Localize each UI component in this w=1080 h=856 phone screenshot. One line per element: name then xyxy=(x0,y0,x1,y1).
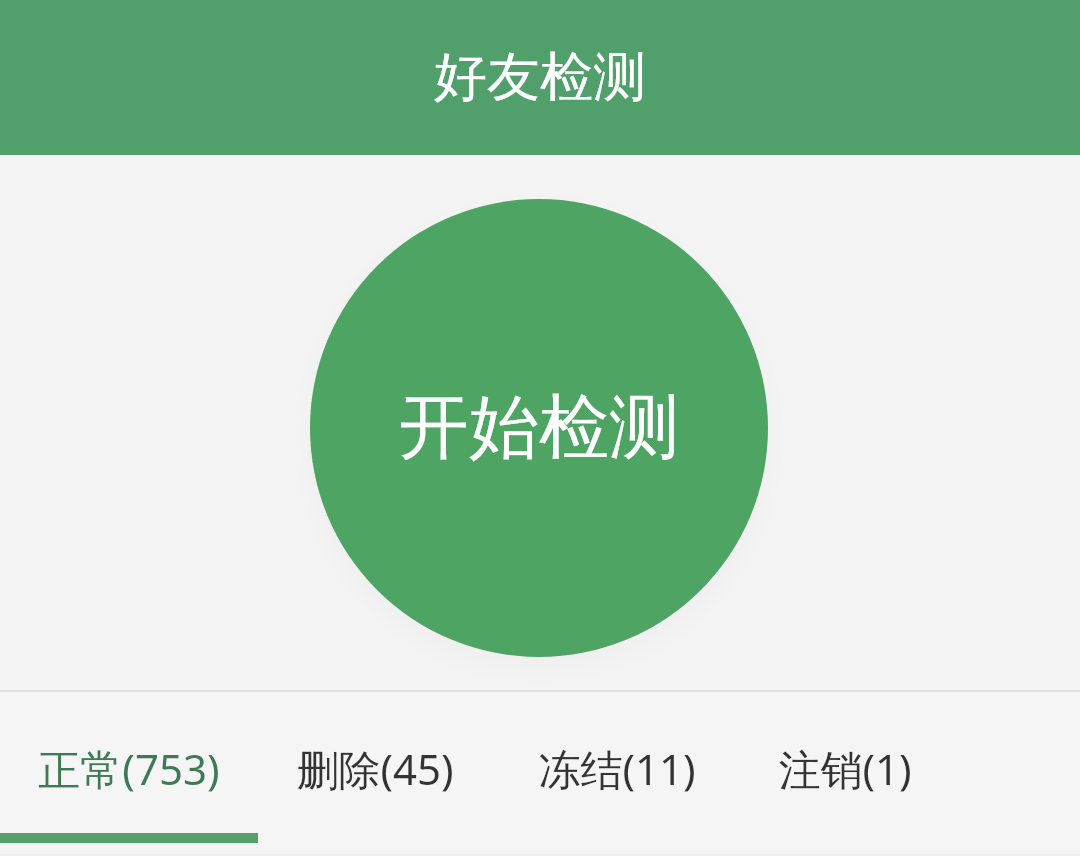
staticText: 删除(45) xyxy=(296,740,454,797)
button[interactable]: 删除(45) xyxy=(258,692,500,844)
staticText: 好友检测 xyxy=(434,44,646,111)
staticText: 注销(1) xyxy=(778,740,912,797)
button[interactable]: 正常(753) xyxy=(0,692,258,844)
button[interactable]: 冻结(11) xyxy=(500,692,740,844)
staticText: 正常(753) xyxy=(38,740,220,797)
button[interactable]: 注销(1) xyxy=(740,692,960,844)
staticText: 冻结(11) xyxy=(538,740,696,797)
button[interactable]: 开始检测 xyxy=(310,199,768,657)
staticText: 开始检测 xyxy=(399,384,679,472)
